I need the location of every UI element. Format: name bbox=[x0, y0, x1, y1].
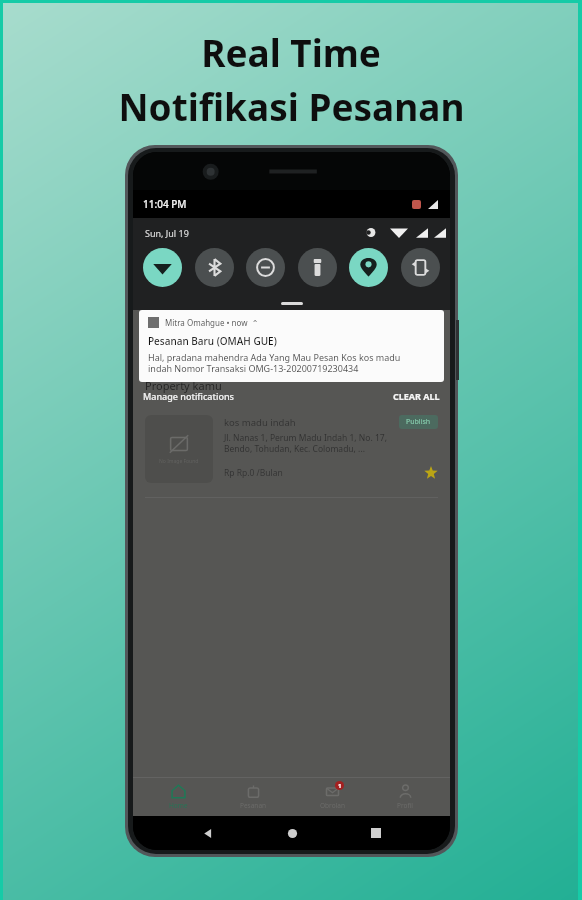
staticText: No Image Found bbox=[159, 458, 199, 465]
button[interactable]: Back bbox=[196, 822, 218, 844]
staticText: Obrolan bbox=[320, 801, 345, 810]
button[interactable]: Home bbox=[153, 782, 204, 812]
staticText: Publish bbox=[406, 417, 431, 427]
button[interactable]: No Image Found bbox=[133, 415, 450, 498]
button[interactable]: Auto rotate bbox=[401, 248, 440, 287]
staticText: Tambah guest house bbox=[199, 348, 288, 360]
staticText: Hal, pradana mahendra Ada Yang Mau Pesan… bbox=[148, 351, 401, 375]
button[interactable]: Wi-Fi bbox=[143, 248, 182, 287]
staticText: Rp Rp.0 /Bulan bbox=[224, 467, 283, 479]
staticText: Home bbox=[169, 801, 188, 810]
button[interactable]: Manage notifications bbox=[143, 390, 234, 402]
staticText: CLEAR ALL bbox=[393, 390, 440, 402]
staticText: Jl. Nanas 1, Perum Madu Indah 1, No. 17,… bbox=[224, 432, 387, 454]
staticText: Sun, Jul 19 bbox=[145, 227, 189, 239]
button[interactable]: CLEAR ALL bbox=[393, 390, 440, 402]
staticText: 1 bbox=[338, 782, 342, 790]
button[interactable]: Recents bbox=[365, 822, 387, 844]
staticText: Pesanan bbox=[240, 801, 267, 810]
staticText: kos madu indah bbox=[224, 416, 399, 429]
staticText: Real Time bbox=[201, 27, 381, 77]
staticText: Mitra Omahgue • now ⌃ bbox=[165, 317, 259, 328]
button[interactable]: Location bbox=[349, 248, 388, 287]
staticText: Profil bbox=[397, 801, 414, 810]
button[interactable]: Mitra Omahgue • now ⌃ bbox=[139, 310, 444, 382]
button[interactable]: Bluetooth bbox=[195, 248, 234, 287]
staticText: Notifikasi Pesanan bbox=[118, 81, 465, 131]
staticText: 11:04 PM bbox=[143, 197, 187, 211]
button[interactable]: Flashlight bbox=[298, 248, 337, 287]
button[interactable]: Home bbox=[281, 822, 303, 844]
staticText: Property kamu bbox=[145, 378, 222, 393]
button[interactable]: 1 bbox=[304, 782, 361, 812]
button[interactable]: Pesanan bbox=[224, 782, 283, 812]
button[interactable]: Do not disturb bbox=[246, 248, 285, 287]
staticText: Pesanan Baru (OMAH GUE) bbox=[148, 334, 277, 348]
staticText: Manage notifications bbox=[143, 390, 234, 402]
button[interactable]: Profil bbox=[381, 782, 430, 812]
